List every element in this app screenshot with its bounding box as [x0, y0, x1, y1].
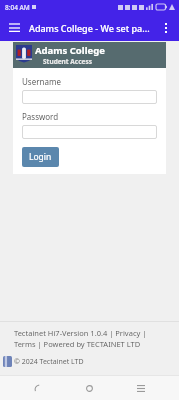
button[interactable]: Text input: [22, 125, 157, 139]
staticText: Student Access: [43, 57, 92, 66]
staticText: 8:04 AM: [5, 3, 30, 12]
button[interactable]: Back: [26, 377, 48, 399]
button[interactable]: Home: [78, 377, 100, 399]
staticText: Adams College - We set pa...: [29, 22, 150, 34]
staticText: Tectainet Hi7-Version 1.0.4 | Privacy | …: [14, 328, 169, 349]
button[interactable]: Open navigation menu: [4, 18, 24, 38]
button[interactable]: More options: [156, 18, 176, 38]
staticText: Username: [22, 76, 61, 87]
button[interactable]: Login: [22, 147, 59, 167]
staticText: Login: [29, 151, 52, 163]
staticText: Password: [22, 111, 59, 122]
staticText: © 2024 Tectainet LTD: [14, 357, 84, 367]
button[interactable]: Recent apps: [130, 377, 152, 399]
button[interactable]: Text input: [22, 90, 157, 104]
staticText: Adams College: [35, 44, 105, 57]
